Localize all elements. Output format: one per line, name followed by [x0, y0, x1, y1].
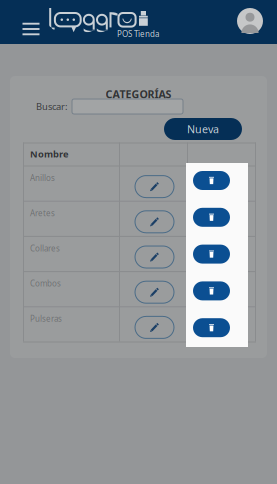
- staticText: Aretes: [30, 208, 55, 218]
- button[interactable]: Eliminar Aretes: [194, 212, 231, 231]
- staticText: Nueva: [187, 122, 219, 136]
- button[interactable]: Eliminar Collares: [194, 247, 231, 266]
- button[interactable]: Eliminar Anillos: [194, 177, 231, 196]
- button[interactable]: Editar Aretes: [135, 211, 174, 233]
- staticText: Buscar:: [36, 100, 68, 113]
- staticText: Combos: [30, 278, 61, 289]
- button[interactable]: Editar Combos: [135, 281, 174, 303]
- button[interactable]: Editar Pulseras: [135, 316, 174, 338]
- staticText: Anillos: [30, 173, 55, 183]
- staticText: CATEGORÍAS: [105, 87, 171, 101]
- button[interactable]: Nueva: [164, 118, 242, 140]
- button[interactable]: Eliminar: [193, 245, 230, 264]
- button[interactable]: Eliminar: [193, 171, 230, 190]
- button[interactable]: Cuenta: [237, 8, 263, 34]
- staticText: Collares: [30, 243, 60, 254]
- button[interactable]: Editar Anillos: [135, 176, 174, 198]
- button[interactable]: Editar Collares: [135, 246, 174, 268]
- staticText: POS Tienda: [117, 29, 159, 39]
- button[interactable]: loggro POS Tienda: [48, 0, 150, 44]
- staticText: Nombre: [30, 148, 69, 160]
- button[interactable]: Eliminar Pulseras: [194, 317, 231, 336]
- button[interactable]: Eliminar: [193, 318, 230, 337]
- button[interactable]: Eliminar: [193, 281, 230, 300]
- button[interactable]: Menú: [18, 16, 44, 42]
- button[interactable]: Eliminar Combos: [194, 282, 231, 301]
- button[interactable]: Eliminar: [193, 208, 230, 227]
- staticText: Pulseras: [30, 313, 62, 324]
